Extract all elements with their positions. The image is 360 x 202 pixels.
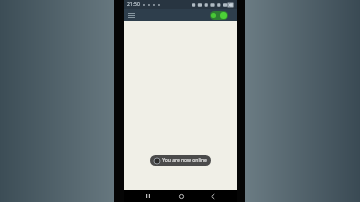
button[interactable]: Home [172, 190, 190, 202]
button[interactable]: Recent apps [139, 190, 157, 202]
staticText: You are now online [162, 157, 207, 164]
button[interactable]: Open navigation menu [127, 11, 136, 20]
button[interactable]: Back [204, 190, 222, 202]
button[interactable]: Online toggle, on [209, 10, 228, 20]
button[interactable]: You are now online [150, 155, 211, 166]
staticText: 21:50 [127, 1, 140, 8]
